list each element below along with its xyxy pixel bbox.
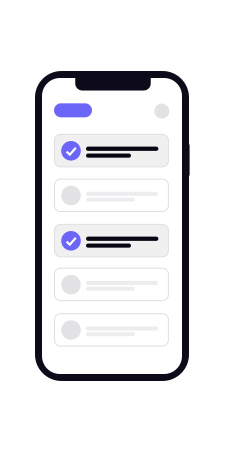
button[interactable]: Profile <box>154 104 169 119</box>
button[interactable]: Menu <box>54 103 92 117</box>
button[interactable]: Task <box>54 314 168 346</box>
button[interactable]: Completed task <box>54 224 168 257</box>
button[interactable]: Task <box>54 268 168 301</box>
button[interactable]: Task <box>54 179 168 211</box>
button[interactable]: Completed task <box>54 134 168 167</box>
